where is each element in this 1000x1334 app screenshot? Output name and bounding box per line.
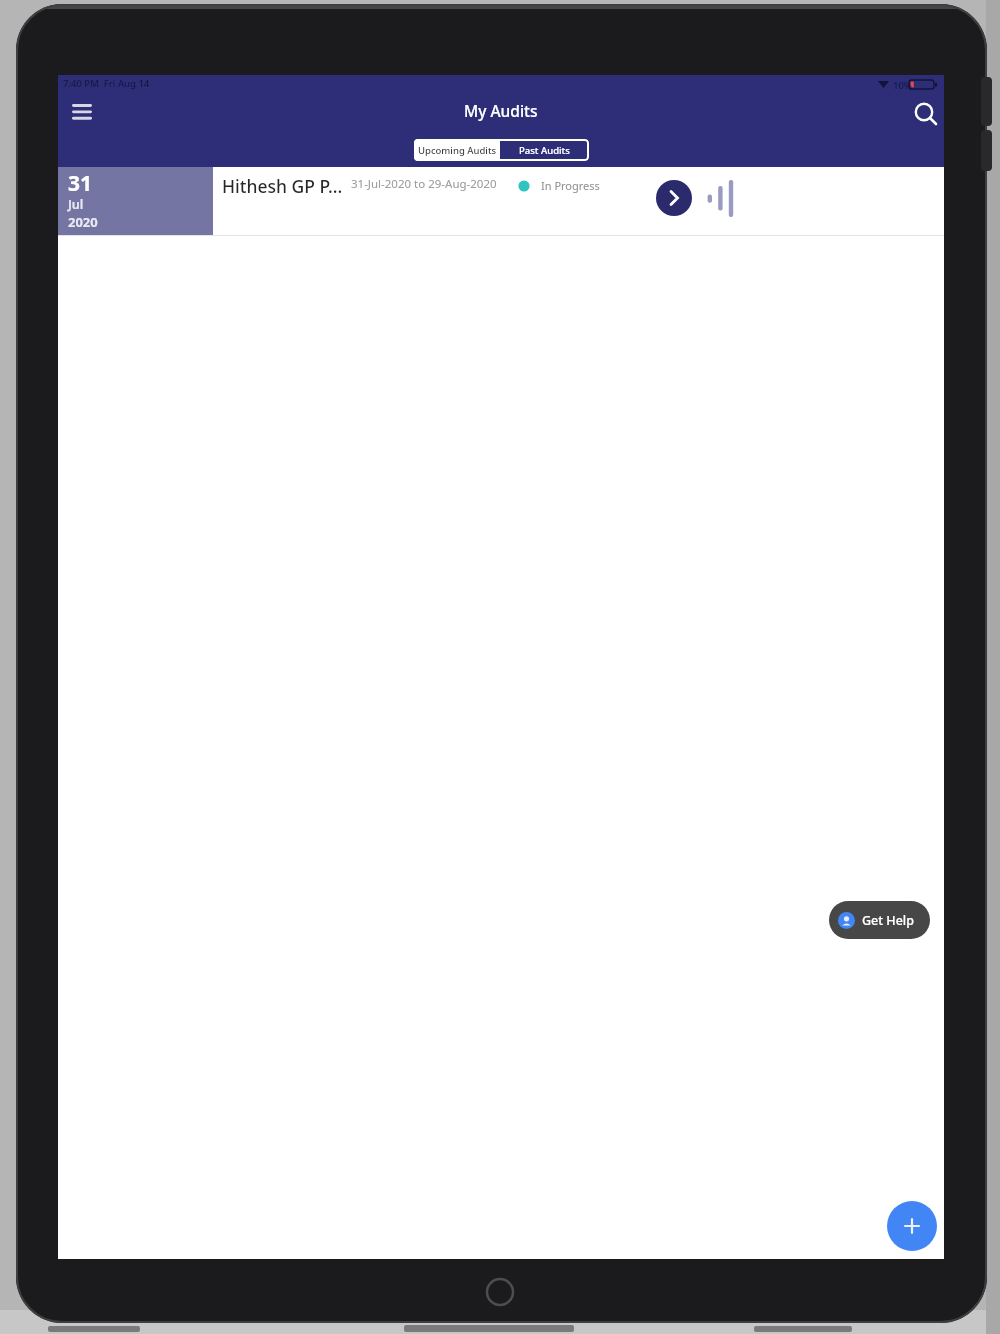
button[interactable]: Get Help	[829, 901, 930, 939]
button[interactable]	[887, 1201, 937, 1251]
staticText: In Progress	[541, 178, 600, 193]
button[interactable]: Past Audits	[500, 139, 589, 161]
button[interactable]	[66, 97, 100, 125]
staticText: 7:40 PM Fri Aug 14	[63, 77, 150, 90]
staticText: Upcoming Audits	[418, 144, 497, 157]
button[interactable]	[656, 180, 692, 216]
button[interactable]: Upcoming Audits	[414, 139, 500, 161]
staticText: 31-Jul-2020 to 29-Aug-2020	[351, 176, 497, 192]
staticText: 2020	[68, 213, 98, 231]
staticText: Get Help	[862, 912, 914, 929]
staticText: Past Audits	[519, 144, 570, 157]
staticText: 10%	[893, 79, 912, 92]
button[interactable]: 31	[58, 167, 944, 235]
staticText: Jul	[68, 196, 84, 213]
staticText: My Audits	[464, 100, 538, 121]
button[interactable]	[705, 179, 737, 219]
button[interactable]	[906, 97, 944, 133]
staticText: 31	[68, 169, 93, 198]
staticText: Hithesh GP P...	[222, 174, 343, 198]
